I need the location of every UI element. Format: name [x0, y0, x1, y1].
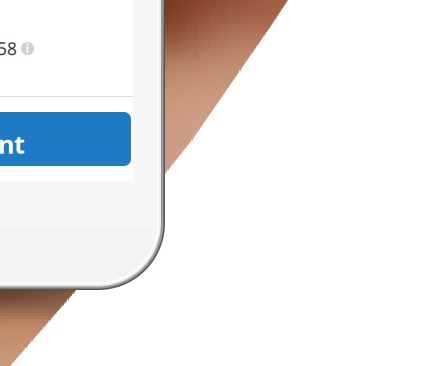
- staticText: 58: [0, 37, 17, 60]
- staticText: nt: [0, 127, 25, 161]
- button[interactable]: nt: [0, 112, 446, 366]
- staticText: i: [25, 40, 29, 56]
